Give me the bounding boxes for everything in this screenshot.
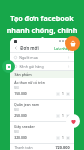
button[interactable]: Giảm <box>56 92 60 96</box>
staticText: Đơn mới <box>20 45 39 51</box>
button[interactable]: Yêu thích <box>66 114 80 128</box>
button[interactable]: Đơn mới <box>10 44 74 52</box>
button[interactable]: Sản phẩm <box>10 71 74 78</box>
staticText: Lưu nháp <box>54 46 70 51</box>
staticText: SKU <box>14 130 19 134</box>
staticText: 320.000 <box>14 135 27 140</box>
button[interactable]: Giỏ hàng <box>65 36 80 51</box>
button[interactable]: Tăng <box>66 136 70 140</box>
button[interactable]: Tăng <box>66 114 70 118</box>
button[interactable]: Quần jean nam <box>10 100 74 121</box>
staticText: SKU <box>14 86 19 90</box>
staticText: nhanh chóng, chính xác <box>6 25 78 44</box>
staticText: 720.000 <box>55 145 70 150</box>
staticText: Tạo đơn facebook <box>10 13 74 23</box>
button[interactable]: Tăng <box>66 92 70 96</box>
staticText: Người mua <box>19 55 38 60</box>
staticText: 1 <box>62 136 64 140</box>
staticText: Áo thun nữ cổ tròn <box>14 80 45 85</box>
button[interactable]: Giảm <box>56 136 60 140</box>
button[interactable]: Người mua <box>10 53 74 61</box>
staticText: SKU <box>14 108 19 112</box>
button[interactable]: Giảm <box>56 114 60 118</box>
staticText: 1 <box>62 114 64 118</box>
staticText: Kênh gửi hàng <box>19 64 44 69</box>
staticText: Quần jean nam <box>14 102 39 107</box>
staticText: Sản phẩm <box>14 72 32 77</box>
button[interactable]: Kênh gửi hàng <box>10 62 74 70</box>
staticText: 150.000 <box>14 91 27 96</box>
staticText: Thanh toán <box>14 145 33 150</box>
button[interactable]: Áo thun nữ cổ tròn <box>10 78 74 99</box>
button[interactable]: Giày sneaker <box>10 122 74 143</box>
staticText: 1 <box>62 92 64 96</box>
staticText: Giày sneaker <box>14 124 35 129</box>
button[interactable]: Bảo mật <box>2 60 15 73</box>
staticText: 250.000 <box>14 113 27 118</box>
